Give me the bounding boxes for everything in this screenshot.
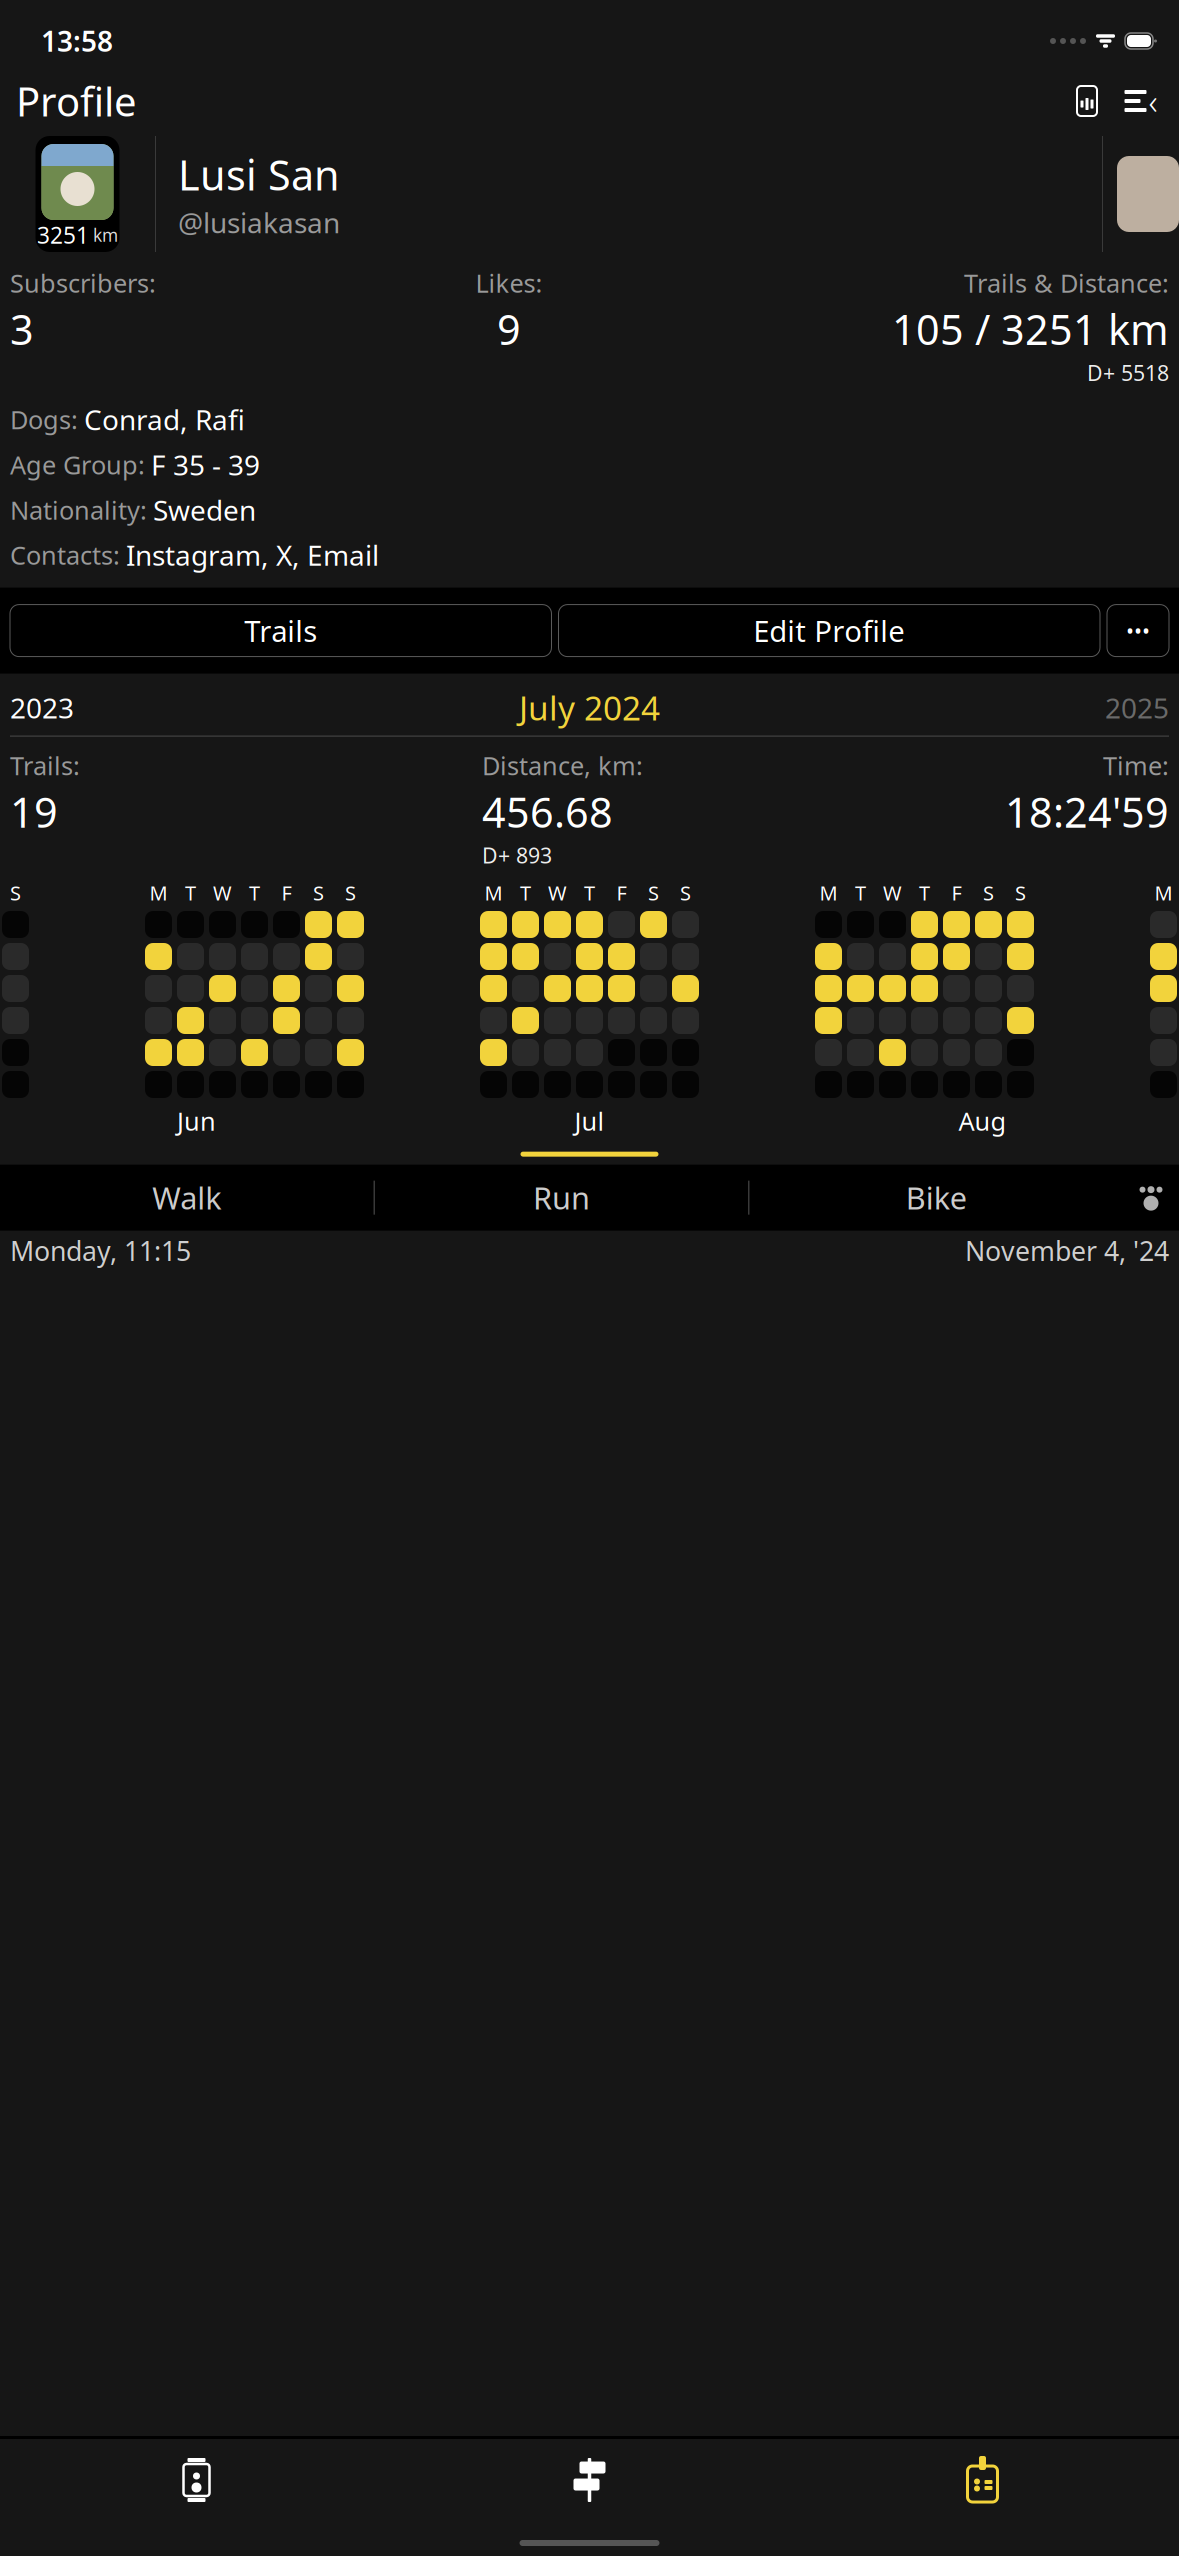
button[interactable]: Statistics: [1065, 79, 1109, 123]
staticText: Bike: [906, 1177, 967, 1218]
staticText: July 2024: [519, 685, 660, 730]
staticText: Trails: [244, 611, 317, 650]
staticText: Dogs:: [10, 403, 78, 436]
staticText: Likes:: [475, 266, 542, 300]
staticText: ‹: [1148, 78, 1157, 124]
staticText: Edit Profile: [753, 611, 905, 650]
button[interactable]: Lusi San: [156, 136, 1102, 252]
staticText: 13:58: [41, 22, 113, 60]
button[interactable]: More options: [1107, 605, 1169, 657]
staticText: Instagram, X, Email: [126, 536, 379, 574]
staticText: •••: [1126, 616, 1150, 645]
staticText: Age Group:: [10, 448, 145, 481]
staticText: 2023: [10, 689, 74, 726]
staticText: 9: [497, 302, 521, 356]
staticText: Subscribers:: [10, 266, 156, 300]
staticText: T: [185, 879, 196, 906]
staticText: Nationality:: [10, 493, 147, 527]
staticText: S: [648, 879, 659, 906]
staticText: Walk: [152, 1177, 221, 1218]
staticText: S: [983, 879, 994, 906]
staticText: M: [149, 879, 167, 906]
staticText: 18:24'59: [1005, 784, 1169, 839]
staticText: Conrad, Rafi: [84, 401, 245, 438]
button[interactable]: Menu: [1119, 79, 1163, 123]
staticText: W: [213, 879, 232, 906]
staticText: 19: [10, 784, 58, 839]
button[interactable]: Next profile: [1103, 136, 1179, 252]
staticText: T: [855, 879, 866, 906]
staticText: T: [919, 879, 930, 906]
staticText: F 35 - 39: [151, 446, 260, 483]
staticText: Contacts:: [10, 538, 120, 572]
staticText: D+ 893: [482, 841, 552, 869]
button[interactable]: Run: [375, 1165, 748, 1231]
staticText: F: [281, 879, 291, 906]
staticText: November 4, '24: [965, 1233, 1169, 1268]
staticText: M: [484, 879, 502, 906]
staticText: Jul: [574, 1104, 604, 1138]
staticText: M: [819, 879, 837, 906]
staticText: Time:: [1103, 749, 1169, 782]
staticText: Distance, km:: [482, 749, 643, 782]
button[interactable]: Walk: [0, 1165, 374, 1231]
staticText: Lusi San: [178, 147, 340, 202]
staticText: F: [616, 879, 626, 906]
staticText: Jun: [177, 1104, 216, 1138]
button[interactable]: 2023: [10, 689, 74, 726]
button[interactable]: Profile: [786, 2449, 1179, 2511]
staticText: S: [345, 879, 356, 906]
button[interactable]: July 2024: [519, 685, 660, 730]
staticText: F: [951, 879, 961, 906]
staticText: T: [249, 879, 260, 906]
staticText: 105 / 3251 km: [892, 302, 1169, 356]
staticText: 2025: [1105, 689, 1169, 726]
staticText: Trails & Distance:: [964, 266, 1169, 300]
staticText: @lusiakasan: [178, 204, 340, 241]
button[interactable]: Bike: [749, 1165, 1123, 1231]
staticText: S: [1015, 879, 1026, 906]
staticText: S: [680, 879, 691, 906]
staticText: W: [548, 879, 567, 906]
button[interactable]: 2025: [1105, 689, 1169, 726]
staticText: Aug: [958, 1104, 1006, 1138]
staticText: km: [93, 223, 118, 246]
staticText: 3: [10, 302, 34, 356]
button[interactable]: Photos: [0, 2449, 393, 2511]
staticText: T: [520, 879, 531, 906]
staticText: T: [584, 879, 595, 906]
staticText: S: [313, 879, 324, 906]
staticText: W: [883, 879, 902, 906]
staticText: Trails:: [10, 749, 80, 782]
staticText: S: [10, 879, 21, 906]
button[interactable]: Edit Profile: [558, 605, 1100, 657]
staticText: D+ 5518: [1087, 358, 1169, 387]
button[interactable]: Trails: [10, 605, 551, 657]
button[interactable]: 3251: [35, 136, 119, 252]
staticText: Run: [533, 1177, 590, 1218]
staticText: Profile: [16, 74, 137, 127]
button[interactable]: Trails: [393, 2449, 786, 2511]
staticText: 456.68: [482, 784, 613, 839]
staticText: Monday, 11:15: [10, 1233, 191, 1268]
button[interactable]: Dog activities: [1123, 1165, 1179, 1231]
staticText: M: [1154, 879, 1172, 906]
staticText: Sweden: [153, 491, 256, 528]
staticText: 3251: [37, 220, 89, 250]
